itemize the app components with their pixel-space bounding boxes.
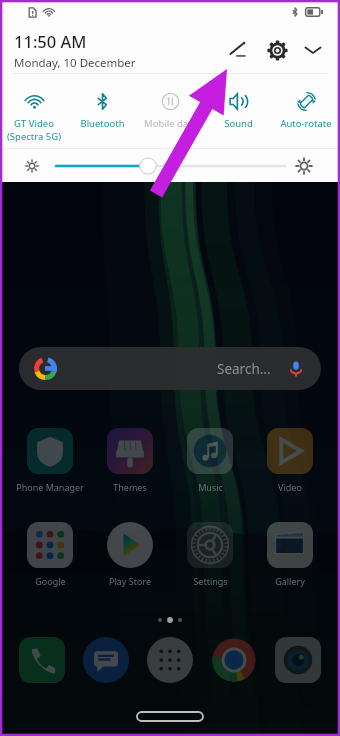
staticText: Search... (217, 360, 271, 378)
button[interactable]: Play Store (90, 522, 170, 568)
staticText: 11:50 AM (14, 30, 87, 52)
staticText: Phone Manager (16, 481, 84, 493)
button[interactable]: Gallery (250, 522, 330, 568)
button[interactable]: Music (170, 428, 250, 474)
staticText: Themes (113, 481, 147, 493)
button[interactable]: GT Video (Spectra 5G) (0, 92, 68, 143)
staticText: Video (278, 481, 302, 493)
button[interactable]: Sound (204, 92, 272, 130)
staticText: Mobile data (144, 117, 197, 130)
button[interactable]: Camera (275, 637, 321, 683)
button[interactable]: Google (10, 522, 90, 568)
button[interactable]: Settings (170, 522, 250, 568)
staticText: GT Video (Spectra 5G) (7, 117, 61, 143)
button[interactable]: Edit tiles (222, 34, 254, 66)
button[interactable]: Mobile data (136, 92, 204, 130)
button[interactable]: Search... (19, 347, 321, 390)
staticText: Gallery (275, 575, 305, 587)
button[interactable]: Bluetooth (68, 92, 136, 130)
staticText: Play Store (109, 575, 151, 587)
staticText: Sound (224, 117, 253, 130)
staticText: Google (35, 575, 66, 587)
staticText: Monday, 10 December (14, 55, 136, 71)
staticText: Music (198, 481, 223, 493)
staticText: Bluetooth (80, 117, 125, 130)
staticText: Settings (193, 575, 228, 587)
button[interactable]: Messages (83, 637, 129, 683)
button[interactable]: Chrome (211, 637, 257, 683)
button[interactable]: Auto-rotate (272, 92, 340, 130)
button[interactable]: Themes (90, 428, 170, 474)
button[interactable]: Phone (19, 637, 65, 683)
button[interactable]: Phone Manager (10, 428, 90, 474)
button[interactable]: Video (250, 428, 330, 474)
button[interactable]: Settings (261, 34, 293, 66)
button[interactable]: All apps (147, 637, 193, 683)
button[interactable]: Collapse (297, 34, 329, 66)
staticText: Auto-rotate (280, 117, 332, 130)
